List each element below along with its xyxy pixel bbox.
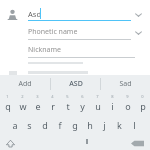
staticText: 8 — [111, 94, 114, 99]
button[interactable]: l — [127, 115, 142, 135]
button[interactable]: Expand phonetic name — [134, 30, 143, 36]
staticText: k — [117, 119, 122, 131]
staticText: 2 — [21, 94, 24, 99]
button[interactable]: 9 — [120, 93, 135, 115]
staticText: g — [72, 119, 78, 131]
button[interactable]: 5 — [60, 93, 75, 115]
button[interactable]: Add — [0, 75, 50, 93]
staticText: 7 — [96, 94, 99, 99]
staticText: Add — [18, 79, 32, 89]
button[interactable]: a — [7, 115, 22, 135]
button[interactable]: s — [22, 115, 37, 135]
staticText: 5 — [66, 94, 69, 99]
staticText: 3 — [36, 94, 39, 99]
button[interactable]: d — [37, 115, 52, 135]
button[interactable]: 4 — [45, 93, 60, 115]
staticText: i — [111, 100, 114, 112]
staticText: Sad — [119, 79, 132, 89]
staticText: l — [133, 119, 136, 131]
button[interactable]: j — [97, 115, 112, 135]
staticText: 6 — [81, 94, 84, 99]
button[interactable]: 6 — [75, 93, 90, 115]
staticText: f — [58, 119, 62, 131]
staticText: a — [12, 119, 18, 131]
staticText: j — [103, 119, 106, 131]
staticText: 9 — [126, 94, 129, 99]
staticText: p — [140, 100, 146, 112]
staticText: w — [19, 100, 27, 112]
button[interactable]: 8 — [105, 93, 120, 115]
button[interactable]: Expand name fields — [134, 12, 143, 18]
staticText: 4 — [51, 94, 54, 99]
staticText: o — [125, 100, 131, 112]
button[interactable]: 0 — [135, 93, 150, 115]
button[interactable]: ASD — [51, 75, 100, 93]
staticText: t — [66, 100, 70, 112]
staticText: u — [95, 100, 101, 112]
button[interactable]: Sad — [101, 75, 150, 93]
button[interactable]: 7 — [90, 93, 105, 115]
staticText: h — [87, 119, 93, 131]
button[interactable]: h — [82, 115, 97, 135]
button[interactable]: 1 — [0, 93, 15, 115]
button[interactable]: f — [52, 115, 67, 135]
staticText: 0 — [141, 94, 144, 99]
staticText: Nickname — [28, 45, 61, 55]
staticText: Asd — [28, 9, 41, 19]
button[interactable]: k — [112, 115, 127, 135]
staticText: ASD — [69, 79, 83, 89]
staticText: y — [80, 100, 85, 112]
staticText: Phonetic name — [28, 27, 78, 37]
button[interactable]: 3 — [30, 93, 45, 115]
button[interactable]: g — [67, 115, 82, 135]
staticText: r — [51, 100, 55, 112]
staticText: d — [42, 119, 48, 131]
button[interactable]: 2 — [15, 93, 30, 115]
staticText: 1 — [6, 94, 9, 99]
staticText: s — [27, 119, 32, 131]
staticText: q — [5, 100, 11, 112]
staticText: e — [35, 100, 41, 112]
